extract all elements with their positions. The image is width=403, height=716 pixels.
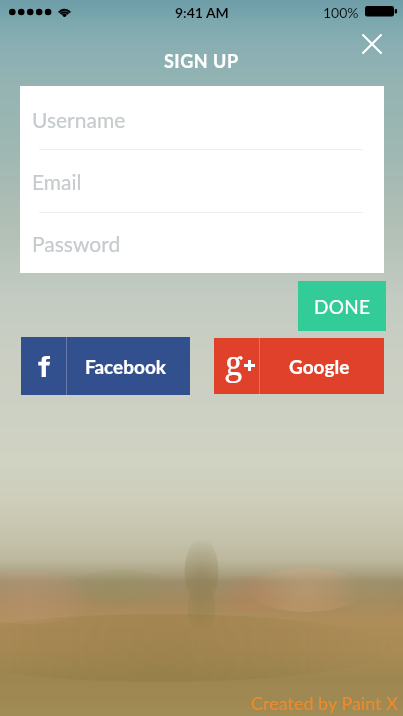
staticText: Username (32, 107, 126, 132)
button[interactable]: Facebook (21, 337, 190, 395)
staticText: 9:41 AM (175, 4, 229, 21)
staticText: 100% (323, 4, 359, 21)
button[interactable]: Close (355, 27, 389, 61)
staticText: SIGN UP (164, 50, 239, 68)
staticText: Password (32, 231, 121, 256)
button[interactable]: g (214, 338, 384, 394)
staticText: DONE (314, 295, 371, 318)
button[interactable]: DONE (298, 281, 386, 331)
staticText: Email (32, 169, 82, 194)
staticText: Facebook (85, 355, 167, 378)
staticText: g (225, 340, 243, 385)
staticText: Google (289, 355, 350, 378)
staticText: Created by Paint X (251, 692, 398, 714)
